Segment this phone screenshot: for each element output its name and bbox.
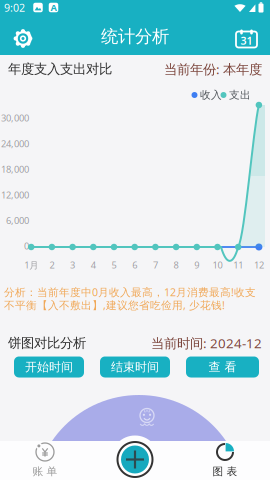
staticText: 18,000: [1, 163, 29, 175]
staticText: 查 看: [208, 360, 236, 374]
staticText: 分析：当前年度中0月收入最高，12月消费最高!收支: [4, 285, 256, 299]
staticText: 账 单: [32, 465, 57, 478]
staticText: 统计分析: [101, 26, 169, 47]
staticText: 图 表: [212, 465, 237, 478]
staticText: 6,000: [6, 214, 29, 227]
staticText: 9:02: [4, 0, 25, 15]
staticText: 不平衡【入不敷出】,建议您省吃俭用, 少花钱!: [4, 298, 225, 312]
button[interactable]: 开始时间: [14, 356, 84, 377]
staticText: 5: [111, 259, 116, 271]
button[interactable]: 查 看: [186, 356, 259, 377]
button[interactable]: 结束时间: [100, 356, 170, 377]
staticText: 10: [212, 259, 222, 271]
staticText: 当前时间: 2024-12: [151, 334, 262, 352]
staticText: 4: [91, 259, 96, 271]
staticText: 9: [194, 259, 199, 271]
staticText: 11: [233, 259, 243, 271]
staticText: 支出: [229, 88, 251, 101]
staticText: 年度支入支出对比: [8, 61, 112, 77]
button[interactable]: 图 表: [180, 441, 270, 480]
staticText: 31: [240, 33, 252, 48]
staticText: 当前年份: 本年度: [164, 60, 262, 78]
staticText: 30,000: [1, 112, 29, 124]
button[interactable]: 账 单: [0, 441, 90, 480]
staticText: 12,000: [1, 189, 29, 201]
staticText: 0: [24, 240, 29, 252]
staticText: 24,000: [1, 137, 29, 150]
staticText: 7: [153, 259, 158, 271]
staticText: A: [50, 1, 56, 14]
staticText: 1月: [24, 259, 38, 271]
staticText: 8: [174, 259, 179, 271]
staticText: 开始时间: [25, 360, 73, 374]
button[interactable]: 设置: [8, 23, 38, 53]
staticText: 收入: [200, 88, 222, 101]
button[interactable]: 记一笔: [115, 439, 155, 479]
staticText: 3: [70, 259, 75, 271]
staticText: 结束时间: [111, 360, 159, 374]
staticText: 饼图对比分析: [8, 335, 86, 351]
staticText: 6: [132, 259, 137, 271]
button[interactable]: 选择年份: [233, 25, 259, 49]
staticText: 2: [49, 259, 54, 271]
staticText: 12: [254, 259, 264, 271]
